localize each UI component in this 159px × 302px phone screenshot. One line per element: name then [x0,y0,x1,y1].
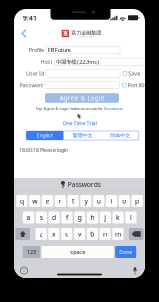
staticText: space [70,248,85,256]
staticText: q [20,197,24,205]
staticText: Host [40,58,52,65]
staticText: o [122,197,126,205]
button[interactable]: Agree & Login [45,93,119,103]
button[interactable]: o [119,195,130,207]
button[interactable]: d [48,211,60,223]
staticText: 富 [63,30,68,37]
staticText: 繁體中文 [72,132,92,139]
staticText: 简体中文 [110,132,130,139]
staticText: English [36,132,53,139]
staticText: x [52,230,56,238]
button[interactable]: g [74,211,85,223]
button[interactable]: One Time Trial [62,113,96,127]
button[interactable]: Shift [15,228,30,240]
staticText: Passwords [68,180,101,189]
staticText: n [103,230,107,238]
button[interactable]: Dictation [131,266,139,274]
button[interactable]: l [125,211,136,223]
button[interactable]: i [106,195,117,207]
button[interactable]: 中国专线 (22.3ms) [54,58,145,65]
button[interactable]: r [55,195,66,207]
staticText: One Time Trial [62,120,96,127]
staticText: i [110,197,112,205]
button[interactable]: j [100,211,111,223]
button[interactable]: Save [123,70,140,77]
staticText: v [78,230,81,238]
staticText: p [135,197,139,205]
button[interactable]: Back [20,29,27,38]
staticText: Profile [29,46,44,54]
button[interactable]: b [87,228,98,240]
button[interactable]: Port 80 [122,82,145,89]
staticText: FB Future [48,46,71,54]
staticText: 富力金融集团 [71,29,101,36]
button[interactable] [45,81,119,89]
staticText: Password [19,82,43,89]
button[interactable]: v [74,228,85,240]
staticText: u [97,197,101,205]
staticText: f [66,213,68,222]
button[interactable]: k [112,211,124,223]
staticText: j [104,213,106,222]
button[interactable]: space [42,246,114,258]
staticText: k [116,213,120,222]
button[interactable]: FB Future [46,46,120,54]
staticText: y [84,197,87,205]
staticText: Done [119,248,132,256]
staticText: a [26,213,30,222]
button[interactable]: z [35,228,47,240]
button[interactable]: 简体中文 [101,131,139,140]
staticText: User Id [26,70,44,77]
staticText: FULI FINANCIAL GROUP [79,36,94,38]
button[interactable]: y [80,195,91,207]
staticText: r [59,197,62,205]
button[interactable]: x [48,228,59,240]
staticText: e [45,197,49,205]
staticText: m [115,230,121,238]
staticText: d [52,213,56,222]
button[interactable]: Done [115,246,136,258]
button[interactable]: h [87,211,98,223]
staticText: Port 80 [128,82,145,89]
button[interactable]: e [42,195,53,207]
staticText: l [130,213,132,222]
staticText: b [90,230,94,238]
staticText: w [32,197,37,205]
staticText: c [65,230,68,238]
staticText: Disclaimer [103,106,123,111]
button[interactable]: m [112,228,123,240]
button[interactable]: q [16,195,28,207]
staticText: s [40,213,43,222]
button[interactable]: 123 [23,246,40,258]
button[interactable]: English [26,131,64,140]
button[interactable]: s [36,211,47,223]
button[interactable]: p [131,195,143,207]
button[interactable]: f [61,211,73,223]
button[interactable]: c [61,228,72,240]
staticText: 18:00:18 Please login [19,146,68,154]
button[interactable]: a [23,211,34,223]
staticText: h [90,213,94,222]
staticText: t [72,197,74,205]
staticText: Tap 'Agree & Login' button to accept the [35,106,103,111]
button[interactable]: Delete [129,228,143,240]
staticText: 123 [27,248,36,256]
button[interactable]: w [29,195,40,207]
staticText: g [78,213,82,222]
staticText: Save [128,70,140,77]
button[interactable]: 繁體中文 [64,131,101,140]
staticText: z [40,230,43,238]
button[interactable]: u [93,195,104,207]
staticText: Agree & Login [59,94,104,102]
staticText: 中国专线 (22.3ms) [56,58,99,65]
button[interactable]: n [99,228,111,240]
staticText: 9:41 [23,14,37,22]
button[interactable]: t [67,195,79,207]
button[interactable]: Emoji [20,266,28,274]
